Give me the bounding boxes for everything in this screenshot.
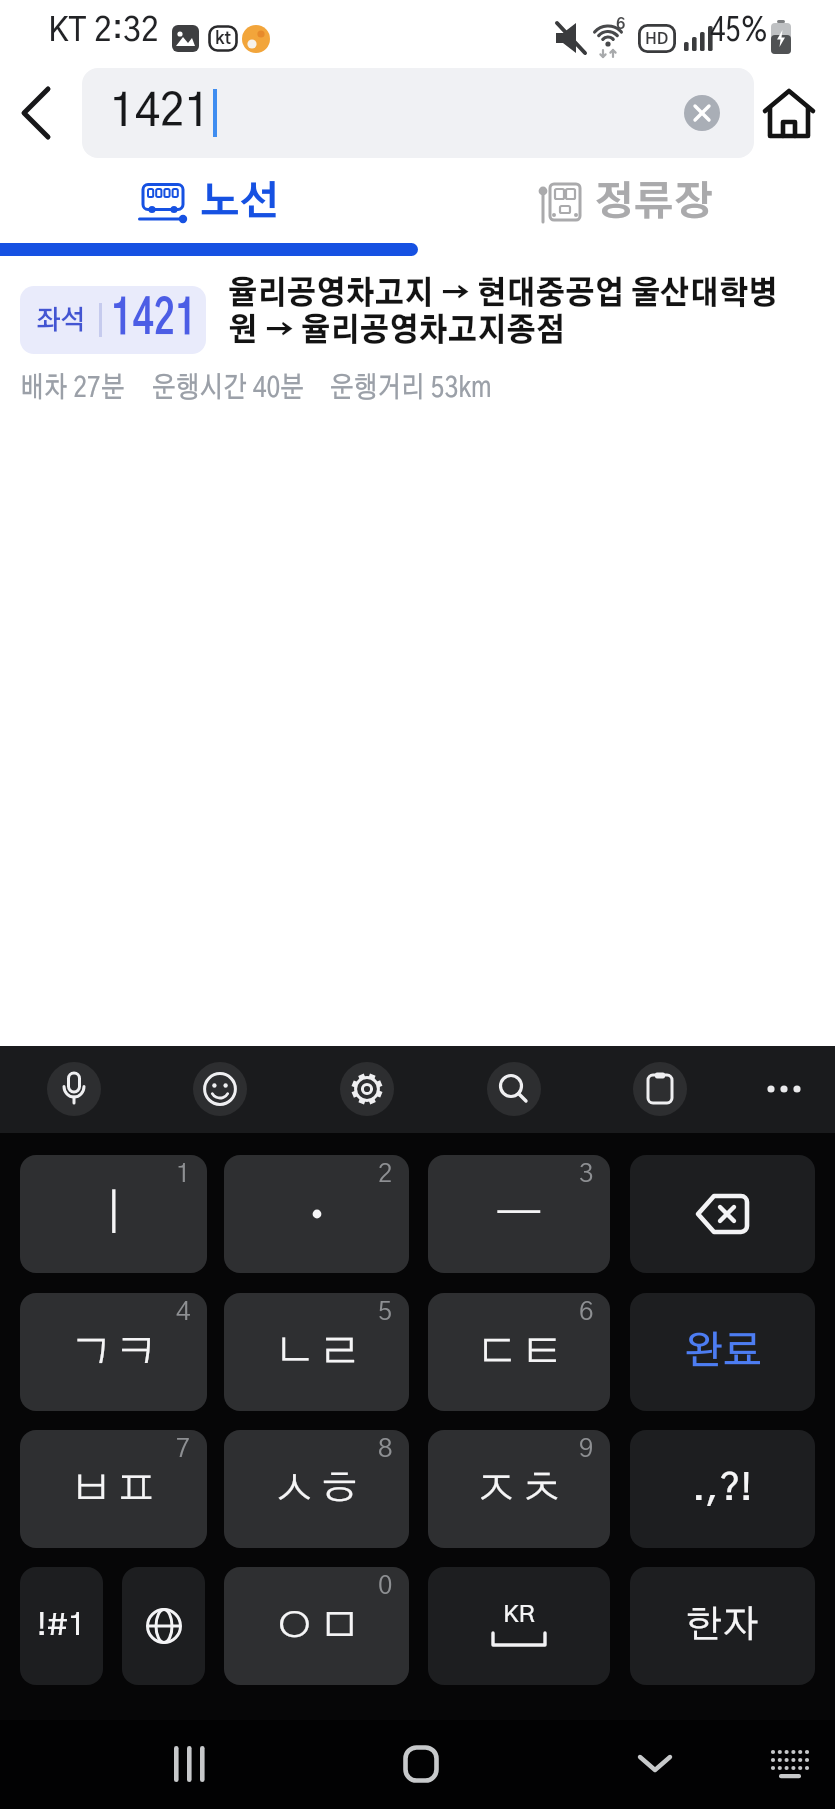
button[interactable]: 노선	[0, 162, 417, 243]
staticText: ㅂㅍ	[69, 1467, 159, 1512]
button[interactable]: ㅅㅎ	[224, 1430, 409, 1548]
button[interactable]: 2	[224, 1155, 409, 1273]
button[interactable]	[391, 1734, 451, 1794]
button[interactable]	[340, 1062, 394, 1116]
staticText: 율리공영차고지 → 현대중공업 울산대학병	[228, 278, 778, 310]
button[interactable]: 1421	[82, 68, 754, 158]
staticText: 7	[176, 1436, 191, 1462]
staticText: 운행거리 53km	[330, 374, 492, 403]
button[interactable]	[47, 1062, 101, 1116]
button[interactable]: ㅂㅍ	[20, 1430, 207, 1548]
staticText: 8	[378, 1436, 393, 1462]
button[interactable]	[625, 1734, 685, 1794]
button[interactable]	[684, 95, 720, 131]
staticText: ㄴㄹ	[272, 1330, 362, 1375]
button[interactable]	[760, 1734, 820, 1794]
staticText: ㄱㅋ	[69, 1330, 159, 1375]
staticText: 4	[176, 1299, 191, 1325]
staticText: ㄷㅌ	[474, 1330, 564, 1375]
staticText: 원 → 율리공영차고지종점	[228, 315, 566, 347]
staticText: !#1	[37, 1611, 86, 1641]
staticText: ㅈㅊ	[474, 1467, 564, 1512]
button[interactable]: ㅣ	[20, 1155, 207, 1273]
staticText: 6	[579, 1299, 594, 1325]
staticText: 5	[378, 1299, 393, 1325]
button[interactable]	[160, 1734, 220, 1794]
button[interactable]	[633, 1062, 687, 1116]
staticText: 9	[579, 1436, 594, 1462]
staticText: ㅇㅁ	[272, 1604, 362, 1649]
button[interactable]: 완료	[630, 1293, 815, 1411]
staticText: 0	[378, 1573, 393, 1599]
button[interactable]	[10, 82, 68, 144]
staticText: KR	[503, 1603, 535, 1627]
button[interactable]: ㅇㅁ	[224, 1567, 409, 1685]
staticText: 3	[579, 1161, 594, 1187]
button[interactable]: ㄴㄹ	[224, 1293, 409, 1411]
staticText: 운행시간 40분	[152, 374, 304, 403]
staticText: 한자	[686, 1607, 760, 1645]
button[interactable]	[122, 1567, 205, 1685]
button[interactable]: .,?!	[630, 1430, 815, 1548]
staticText: 1421	[110, 91, 210, 135]
button[interactable]	[193, 1062, 247, 1116]
staticText: 노선	[200, 183, 280, 223]
staticText: ㅡ	[494, 1189, 544, 1239]
button[interactable]	[756, 82, 822, 144]
staticText: 정류장	[594, 183, 714, 223]
button[interactable]: ㅈㅊ	[428, 1430, 610, 1548]
staticText: kt	[215, 30, 232, 47]
button[interactable]	[630, 1155, 815, 1273]
button[interactable]: KR	[428, 1567, 610, 1685]
button[interactable]: !#1	[20, 1567, 103, 1685]
staticText: ㅣ	[89, 1189, 139, 1239]
button[interactable]: ㄷㅌ	[428, 1293, 610, 1411]
staticText: 1	[176, 1161, 191, 1187]
staticText: 완료	[684, 1332, 762, 1372]
button[interactable]: ㅡ	[428, 1155, 610, 1273]
staticText: .,?!	[692, 1470, 753, 1508]
button[interactable]: 정류장	[417, 162, 835, 243]
staticText: 2	[378, 1161, 393, 1187]
staticText: 1421	[111, 296, 183, 344]
button[interactable]: 좌석	[0, 256, 835, 436]
staticText: 45%	[710, 14, 768, 48]
button[interactable]: ㄱㅋ	[20, 1293, 207, 1411]
button[interactable]	[487, 1062, 541, 1116]
staticText: 6	[616, 16, 626, 32]
staticText: 배차 27분	[20, 374, 125, 403]
button[interactable]: 한자	[630, 1567, 815, 1685]
staticText: 좌석	[36, 307, 86, 334]
staticText: KT 2:32	[48, 14, 160, 48]
staticText: ㅅㅎ	[272, 1467, 362, 1512]
button[interactable]	[757, 1062, 811, 1116]
staticText: HD	[645, 31, 669, 47]
